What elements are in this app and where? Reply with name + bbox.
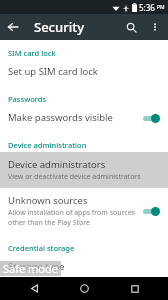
- button[interactable]: Set up SIM card lock: [0, 60, 168, 84]
- staticText: PM: [157, 4, 165, 11]
- button[interactable]: Make passwords visible: [0, 106, 168, 130]
- staticText: Unknown sources: [8, 194, 88, 207]
- staticText: Safe mode: [3, 261, 58, 276]
- staticText: 5:36: [139, 2, 155, 13]
- staticText: Passwords: [8, 94, 47, 104]
- staticText: Make passwords visible: [8, 111, 142, 124]
- staticText: Device administration: [8, 140, 87, 150]
- staticText: other than the Play Store: [8, 218, 90, 228]
- staticText: View or deactivate device administrators: [8, 172, 141, 182]
- button[interactable]: Navigate up: [0, 14, 26, 40]
- button[interactable]: Device administrators: [0, 152, 168, 188]
- button[interactable]: Search: [118, 14, 144, 40]
- button[interactable]: Recent apps: [118, 277, 152, 300]
- staticText: Security: [34, 18, 84, 36]
- button[interactable]: Back: [17, 277, 51, 300]
- button[interactable]: More options: [144, 16, 166, 38]
- button[interactable]: Storage type: [0, 255, 168, 277]
- staticText: Device administrators: [8, 158, 106, 171]
- staticText: SIM card lock: [8, 48, 56, 58]
- button[interactable]: Home: [67, 277, 101, 300]
- staticText: Set up SIM card lock: [8, 65, 98, 78]
- button[interactable]: Unknown sources: [0, 188, 168, 233]
- staticText: Storage type: [8, 260, 65, 273]
- staticText: Credential storage: [8, 243, 75, 253]
- staticText: Allow installation of apps from sources: [8, 208, 135, 218]
